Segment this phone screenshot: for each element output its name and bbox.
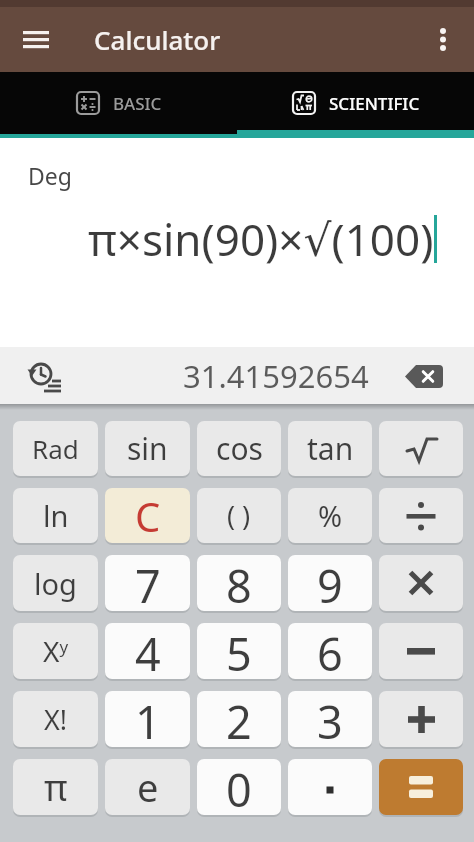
staticText: Xy bbox=[43, 632, 69, 670]
button[interactable]: 4 bbox=[105, 623, 190, 679]
button[interactable]: BASIC bbox=[0, 72, 237, 134]
button[interactable]: C bbox=[105, 488, 190, 543]
button[interactable] bbox=[379, 759, 463, 815]
staticText: log bbox=[34, 564, 77, 603]
staticText: C bbox=[135, 489, 161, 543]
button[interactable]: e bbox=[105, 759, 190, 815]
staticText: 1 bbox=[135, 691, 161, 747]
staticText: Calculator bbox=[94, 22, 221, 57]
staticText: 6 bbox=[317, 623, 343, 679]
staticText: π×sin(90)×√(100) bbox=[88, 209, 434, 269]
button[interactable]: 9 bbox=[288, 555, 372, 611]
staticText: 4 bbox=[135, 623, 161, 679]
staticText: X! bbox=[44, 701, 68, 738]
button[interactable]: 6 bbox=[288, 623, 372, 679]
staticText: π bbox=[44, 763, 68, 812]
staticText: Rad bbox=[32, 431, 79, 466]
button[interactable] bbox=[14, 17, 58, 61]
button[interactable]: X! bbox=[13, 691, 98, 747]
staticText: 9 bbox=[317, 555, 343, 611]
button[interactable]: 1 bbox=[105, 691, 190, 747]
button[interactable]: 7 bbox=[105, 555, 190, 611]
button[interactable] bbox=[425, 21, 461, 57]
button[interactable]: 5 bbox=[197, 623, 281, 679]
button[interactable]: log bbox=[13, 555, 98, 611]
staticText: sin bbox=[127, 428, 168, 469]
button[interactable]: 3 bbox=[288, 691, 372, 747]
button[interactable]: cos bbox=[197, 421, 281, 476]
button[interactable]: 0 bbox=[197, 759, 281, 815]
staticText: e bbox=[137, 761, 159, 813]
staticText: 7 bbox=[135, 555, 161, 611]
staticText: cos bbox=[216, 428, 263, 469]
button[interactable]: π bbox=[13, 759, 98, 815]
staticText: ( ) bbox=[227, 497, 251, 534]
staticText: 0 bbox=[226, 759, 252, 815]
staticText: 2 bbox=[226, 691, 252, 747]
button[interactable] bbox=[379, 421, 463, 476]
button[interactable]: Xy bbox=[13, 623, 98, 679]
staticText: tan bbox=[307, 428, 354, 469]
button[interactable]: ln bbox=[13, 488, 98, 543]
staticText: BASIC bbox=[113, 92, 162, 115]
button[interactable]: ( ) bbox=[197, 488, 281, 543]
staticText: 3 bbox=[317, 691, 343, 747]
button[interactable]: 8 bbox=[197, 555, 281, 611]
button[interactable] bbox=[379, 623, 463, 679]
button[interactable] bbox=[379, 555, 463, 611]
button[interactable]: % bbox=[288, 488, 372, 543]
button[interactable]: sin bbox=[105, 421, 190, 476]
button[interactable] bbox=[288, 759, 372, 815]
button[interactable]: Rad bbox=[13, 421, 98, 476]
button[interactable]: SCIENTIFIC bbox=[237, 72, 474, 134]
button[interactable] bbox=[24, 356, 64, 396]
staticText: 31.41592654 bbox=[183, 355, 369, 397]
staticText: SCIENTIFIC bbox=[329, 92, 420, 115]
staticText: 5 bbox=[226, 623, 252, 679]
staticText: % bbox=[318, 496, 343, 535]
staticText: Deg bbox=[28, 160, 72, 191]
button[interactable] bbox=[379, 691, 463, 747]
staticText: 8 bbox=[226, 555, 252, 611]
staticText: ln bbox=[43, 496, 69, 535]
button[interactable] bbox=[379, 488, 463, 543]
button[interactable]: tan bbox=[288, 421, 372, 476]
button[interactable] bbox=[402, 358, 446, 394]
button[interactable]: 2 bbox=[197, 691, 281, 747]
